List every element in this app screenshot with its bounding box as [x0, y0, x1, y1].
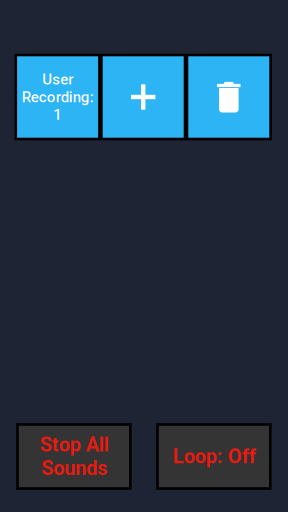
button[interactable]: Add recording: [101, 55, 185, 139]
staticText: User Recording: 1: [22, 70, 94, 123]
button[interactable]: Loop: Off: [157, 424, 270, 488]
button[interactable]: User Recording: 1: [16, 55, 99, 139]
button[interactable]: Stop All Sounds: [17, 424, 130, 488]
staticText: Stop All Sounds: [39, 433, 108, 480]
button[interactable]: Delete recording: [187, 55, 271, 139]
staticText: Loop: Off: [172, 445, 255, 468]
